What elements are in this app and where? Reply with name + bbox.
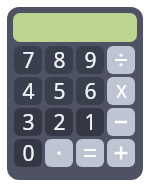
button[interactable]: Plus xyxy=(107,139,135,167)
staticText: 8 xyxy=(53,46,66,74)
button[interactable]: 8 xyxy=(45,46,73,74)
button[interactable]: Multiply xyxy=(107,77,135,105)
button[interactable]: Divide xyxy=(107,46,135,74)
button[interactable]: 4 xyxy=(14,77,42,105)
staticText: 7 xyxy=(22,46,35,74)
button[interactable]: 3 xyxy=(14,108,42,136)
button[interactable]: 6 xyxy=(76,77,104,105)
staticText: 6 xyxy=(84,77,97,105)
button[interactable]: Minus xyxy=(107,108,135,136)
button[interactable]: 2 xyxy=(45,108,73,136)
staticText: 1 xyxy=(84,108,97,136)
button[interactable]: Equals xyxy=(76,139,104,167)
staticText: X xyxy=(116,79,127,104)
other: Display xyxy=(13,13,137,42)
staticText: 5 xyxy=(53,77,66,105)
button[interactable]: Decimal point xyxy=(45,139,73,167)
staticText: 9 xyxy=(84,46,97,74)
button[interactable]: 9 xyxy=(76,46,104,74)
staticText: 2 xyxy=(53,108,66,136)
button[interactable]: 1 xyxy=(76,108,104,136)
button[interactable]: 5 xyxy=(45,77,73,105)
staticText: 0 xyxy=(22,139,35,167)
staticText: 3 xyxy=(22,108,35,136)
button[interactable]: 0 xyxy=(14,139,42,167)
staticText: 4 xyxy=(22,77,35,105)
button[interactable]: 7 xyxy=(14,46,42,74)
